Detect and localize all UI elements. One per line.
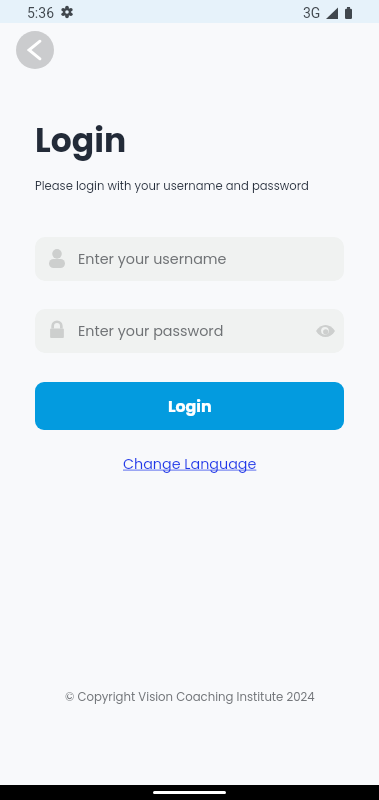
- staticText: Please login with your username and pass…: [35, 178, 309, 194]
- button[interactable]: Login: [35, 382, 344, 430]
- staticText: Enter your password: [78, 321, 224, 341]
- button[interactable]: Show password: [312, 318, 338, 344]
- staticText: 3G: [303, 5, 321, 21]
- button[interactable]: Change Language: [123, 454, 257, 474]
- staticText: 5:36: [27, 5, 54, 21]
- button[interactable]: Enter your username: [35, 237, 344, 281]
- staticText: Enter your username: [78, 249, 227, 269]
- staticText: Login: [168, 395, 212, 417]
- staticText: Login: [35, 117, 127, 163]
- staticText: © Copyright Vision Coaching Institute 20…: [65, 689, 315, 705]
- button[interactable]: Back: [16, 31, 54, 69]
- button[interactable]: Enter your password: [35, 309, 344, 353]
